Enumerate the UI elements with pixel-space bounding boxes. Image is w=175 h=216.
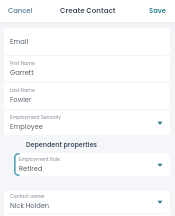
staticText: Garrett bbox=[10, 68, 34, 77]
staticText: Contact owner bbox=[10, 193, 45, 200]
staticText: Nick Holden bbox=[10, 201, 50, 210]
staticText: Create Contact bbox=[60, 6, 116, 16]
staticText: Save bbox=[149, 6, 167, 16]
staticText: Email bbox=[10, 37, 29, 46]
staticText: Cancel bbox=[8, 6, 33, 16]
other: Open dropdown bbox=[157, 200, 163, 204]
button[interactable]: Employment Role bbox=[14, 153, 170, 176]
other: Open dropdown bbox=[157, 121, 163, 125]
staticText: Fowler bbox=[10, 95, 32, 104]
button[interactable]: Email bbox=[4, 28, 170, 55]
staticText: Employment Role bbox=[19, 156, 60, 163]
button[interactable]: Cancel bbox=[0, 1, 39, 21]
button[interactable]: First Name bbox=[4, 56, 170, 82]
staticText: Employee bbox=[10, 122, 43, 131]
staticText: Employment Seniority bbox=[10, 114, 61, 121]
button[interactable]: Last Name bbox=[4, 83, 170, 109]
staticText: Last Name bbox=[10, 87, 35, 94]
other: Open dropdown bbox=[157, 163, 163, 167]
staticText: Retired bbox=[19, 164, 43, 173]
button[interactable]: Save bbox=[143, 1, 175, 21]
staticText: Dependent properties bbox=[26, 140, 98, 149]
button[interactable]: Contact owner bbox=[4, 191, 170, 213]
button[interactable]: Employment Seniority bbox=[4, 110, 170, 135]
staticText: First Name bbox=[10, 60, 35, 67]
